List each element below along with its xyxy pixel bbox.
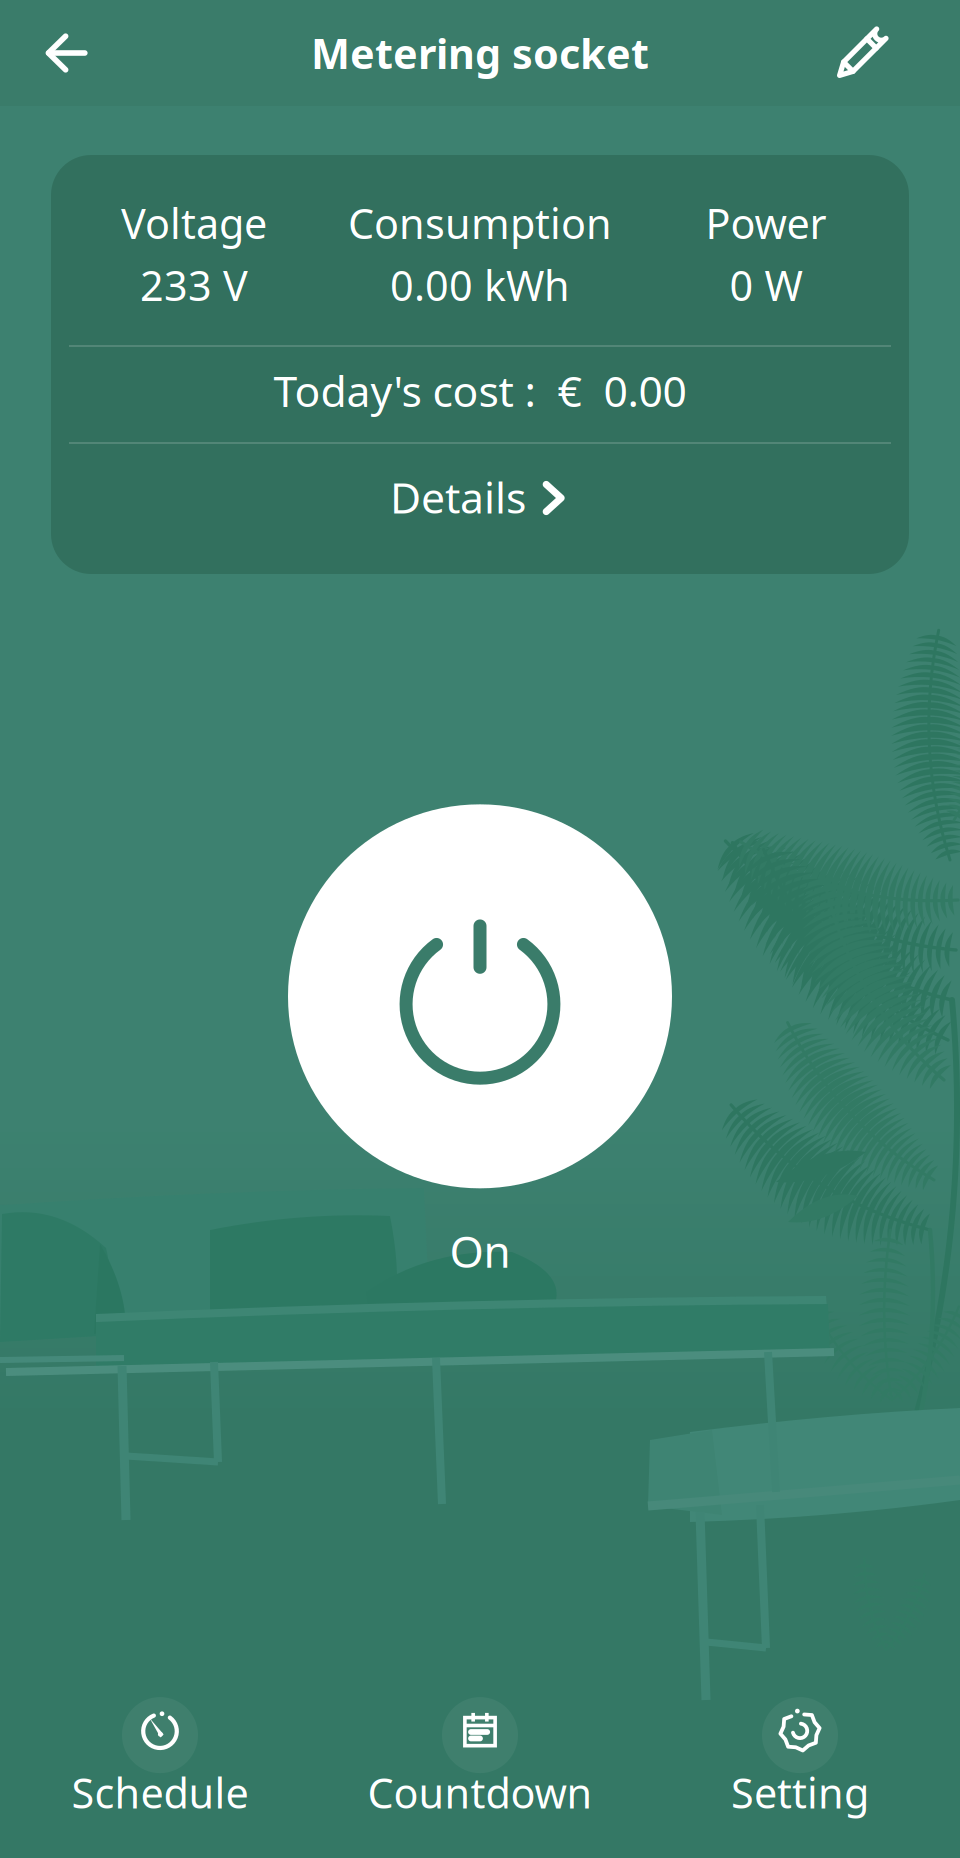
button[interactable]: Power toggle [288,804,672,1188]
button[interactable]: Setting [640,1689,960,1820]
button[interactable]: Schedule [0,1689,320,1820]
staticText: Schedule [71,1765,248,1820]
button[interactable]: Edit [814,5,910,101]
staticText: 0 W [729,257,802,312]
staticText: Countdown [367,1765,592,1820]
staticText: Metering socket [311,26,649,80]
staticText: 0.00 kWh [390,257,570,312]
staticText: Details [390,469,526,525]
staticText: Power [705,196,826,250]
button[interactable]: Back [18,5,114,101]
staticText: Setting [731,1765,869,1820]
button[interactable]: Countdown [320,1689,640,1820]
staticText: Voltage [121,196,267,250]
button[interactable]: Details [51,444,909,574]
staticText: 233 V [140,257,248,312]
staticText: Consumption [348,196,612,250]
staticText: On [449,1221,510,1280]
staticText: Today's cost : € 0.00 [273,362,686,419]
